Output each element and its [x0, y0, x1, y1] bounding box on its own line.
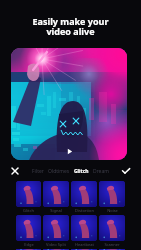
staticText: Glitch	[74, 168, 89, 175]
button[interactable]: Scanner	[99, 215, 125, 247]
button[interactable]: Shake	[99, 249, 125, 250]
staticText: Signal	[50, 208, 62, 213]
button[interactable]: Mirror	[43, 249, 69, 250]
button[interactable]: Signal	[43, 181, 69, 213]
button[interactable]: Noise	[99, 181, 125, 213]
button[interactable]: Glitch	[72, 168, 91, 175]
staticText: Heartbeat	[75, 242, 94, 247]
button[interactable]: Done	[111, 164, 141, 178]
staticText: Dream	[93, 168, 109, 175]
button[interactable]: Play	[11, 48, 127, 160]
button[interactable]: Filter	[30, 168, 46, 175]
staticText: Distortion	[75, 208, 94, 213]
staticText: Oldtimes	[48, 168, 70, 175]
staticText: Easily make your video alive	[0, 15, 141, 37]
button[interactable]: Edge	[16, 215, 41, 247]
button[interactable]: Wave	[16, 249, 41, 250]
staticText: Scanner	[104, 242, 120, 247]
staticText: Filter	[32, 168, 44, 175]
button[interactable]: Distortion	[71, 181, 97, 213]
button[interactable]: Close	[0, 164, 30, 178]
button[interactable]: Zoom	[71, 249, 97, 250]
staticText: Edge	[24, 242, 34, 247]
button[interactable]: Play	[64, 146, 75, 157]
button[interactable]: Glitch	[16, 181, 41, 213]
button[interactable]: Oldtimes	[46, 168, 72, 175]
staticText: Glitch	[23, 208, 34, 213]
staticText: Video Split	[46, 242, 66, 247]
button[interactable]: Video Split	[43, 215, 69, 247]
staticText: Noise	[107, 208, 118, 213]
button[interactable]: Heartbeat	[71, 215, 97, 247]
button[interactable]: Dream	[91, 168, 111, 175]
